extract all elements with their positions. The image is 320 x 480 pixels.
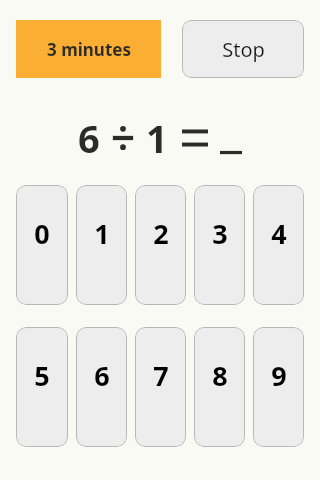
staticText: Stop — [222, 36, 265, 63]
staticText: 7 — [153, 357, 169, 394]
staticText: 6 — [78, 112, 100, 164]
staticText: 6 — [94, 357, 110, 394]
button[interactable]: 3 — [194, 185, 245, 305]
button[interactable]: 0 — [16, 185, 68, 305]
button[interactable]: Stop — [182, 20, 304, 78]
staticText: 3 — [212, 215, 228, 252]
staticText: 1 — [94, 215, 110, 252]
button[interactable]: 9 — [253, 327, 304, 447]
button[interactable]: 2 — [135, 185, 186, 305]
button[interactable]: 8 — [194, 327, 245, 447]
staticText: 2 — [153, 215, 169, 252]
staticText: 5 — [34, 357, 50, 394]
button[interactable]: 3 minutes — [16, 20, 161, 78]
button[interactable]: 5 — [16, 327, 68, 447]
button[interactable]: 7 — [135, 327, 186, 447]
staticText: 1 — [146, 112, 168, 164]
staticText: 4 — [271, 215, 287, 252]
button[interactable]: 4 — [253, 185, 304, 305]
staticText: 0 — [34, 215, 50, 252]
button[interactable]: 1 — [76, 185, 127, 305]
staticText: 9 — [271, 357, 287, 394]
staticText: 3 minutes — [47, 38, 131, 61]
button[interactable]: 6 — [76, 327, 127, 447]
staticText: 8 — [212, 357, 228, 394]
